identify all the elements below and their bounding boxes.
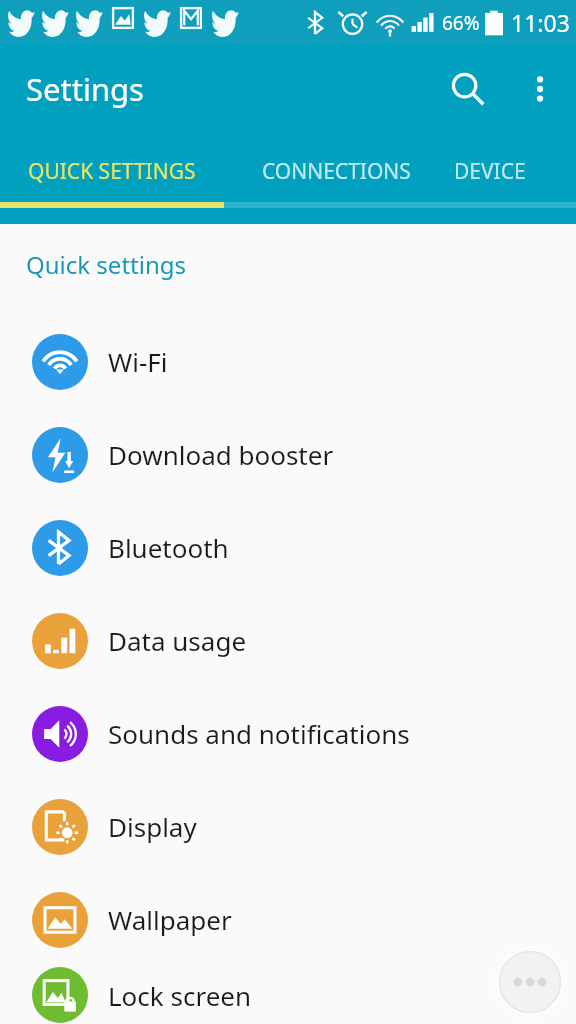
- button[interactable]: Lock screen: [0, 966, 576, 1024]
- staticText: Display: [108, 809, 197, 844]
- staticText: Settings: [26, 68, 144, 110]
- button[interactable]: Wallpaper: [0, 873, 576, 966]
- button[interactable]: Sounds and notifications: [0, 687, 576, 780]
- button[interactable]: CONNECTIONS: [224, 134, 448, 224]
- button[interactable]: QUICK SETTINGS: [0, 134, 224, 224]
- button[interactable]: More options: [504, 53, 576, 125]
- staticText: Lock screen: [108, 978, 252, 1013]
- staticText: Wi-Fi: [108, 344, 168, 379]
- staticText: Download booster: [108, 437, 334, 472]
- staticText: Sounds and notifications: [108, 716, 410, 751]
- staticText: DEVICE: [454, 157, 526, 186]
- staticText: QUICK SETTINGS: [28, 157, 196, 186]
- staticText: Quick settings: [26, 248, 186, 281]
- staticText: 66%: [442, 10, 480, 36]
- button[interactable]: Wi-Fi: [0, 315, 576, 408]
- staticText: 11:03: [511, 7, 570, 38]
- staticText: Data usage: [108, 623, 247, 658]
- staticText: Bluetooth: [108, 530, 229, 565]
- button[interactable]: Download booster: [0, 408, 576, 501]
- button[interactable]: Data usage: [0, 594, 576, 687]
- button[interactable]: More: [492, 944, 568, 1020]
- staticText: Wallpaper: [108, 902, 232, 937]
- button[interactable]: Search: [432, 53, 504, 125]
- staticText: CONNECTIONS: [262, 157, 411, 186]
- button[interactable]: Bluetooth: [0, 501, 576, 594]
- button[interactable]: Display: [0, 780, 576, 873]
- button[interactable]: DEVICE: [448, 134, 576, 224]
